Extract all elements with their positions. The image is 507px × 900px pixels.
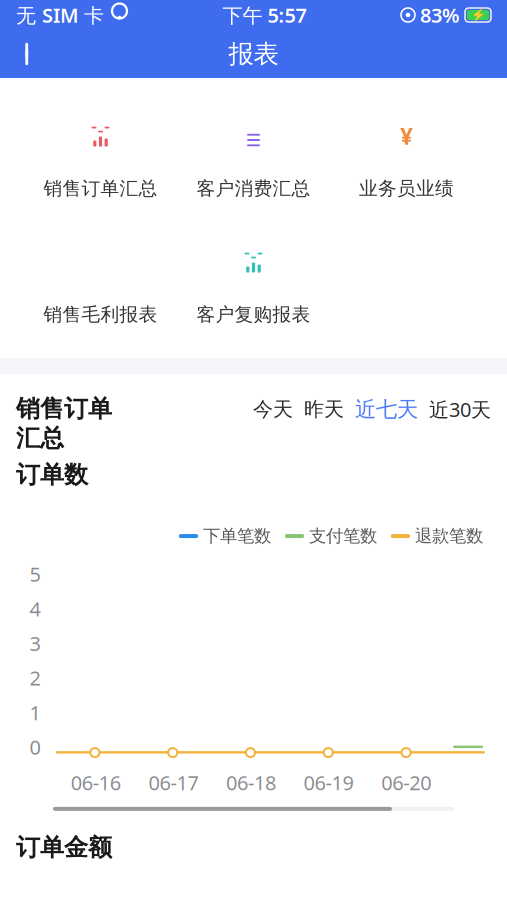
staticText: 4 [29, 595, 40, 622]
staticText: 近七天 [355, 396, 418, 422]
staticText: 今天 [253, 397, 293, 422]
staticText: 支付笔数 [309, 525, 377, 547]
staticText: 销售订单汇总 [16, 394, 112, 453]
staticText: 报表 [228, 38, 278, 69]
staticText: 昨天 [304, 397, 344, 422]
button[interactable]: 返回 [6, 31, 52, 77]
staticText: 5 [29, 561, 40, 587]
staticText: ⚡ [470, 8, 485, 22]
staticText: 销售订单汇总 [43, 177, 157, 200]
staticText: 06-20 [381, 769, 431, 796]
button[interactable]: 昨天 [304, 397, 344, 422]
staticText: 2 [29, 664, 40, 691]
staticText: 业务员业绩 [359, 177, 454, 200]
button[interactable]: 客户消费汇总 [177, 92, 330, 218]
staticText: 06-18 [226, 769, 276, 796]
staticText: 订单数 [16, 460, 88, 489]
staticText: 销售毛利报表 [43, 303, 157, 326]
staticText: 83% [420, 2, 460, 28]
button[interactable]: 客户复购报表 [177, 218, 330, 344]
staticText: 退款笔数 [415, 525, 483, 547]
staticText: 客户消费汇总 [196, 177, 310, 200]
staticText: 06-16 [71, 769, 121, 796]
button[interactable]: 近七天 [355, 396, 418, 422]
button[interactable]: ¥ [330, 92, 483, 218]
button[interactable]: 近30天 [429, 396, 491, 423]
button[interactable]: 今天 [253, 397, 293, 422]
staticText: 下午 5:57 [222, 2, 306, 28]
staticText: 3 [29, 630, 40, 656]
staticText: 06-17 [148, 769, 198, 796]
staticText: ¥ [400, 121, 413, 151]
staticText: 近30天 [429, 396, 491, 423]
button[interactable]: 销售订单汇总 [24, 92, 177, 218]
staticText: 下单笔数 [203, 525, 271, 547]
staticText: 订单金额 [16, 833, 112, 862]
staticText: 06-19 [304, 769, 354, 796]
staticText: 1 [29, 699, 40, 726]
staticText: 无 SIM 卡 [16, 2, 104, 28]
staticText: 客户复购报表 [196, 303, 310, 326]
button[interactable]: 销售毛利报表 [24, 218, 177, 344]
staticText: 0 [29, 734, 40, 760]
